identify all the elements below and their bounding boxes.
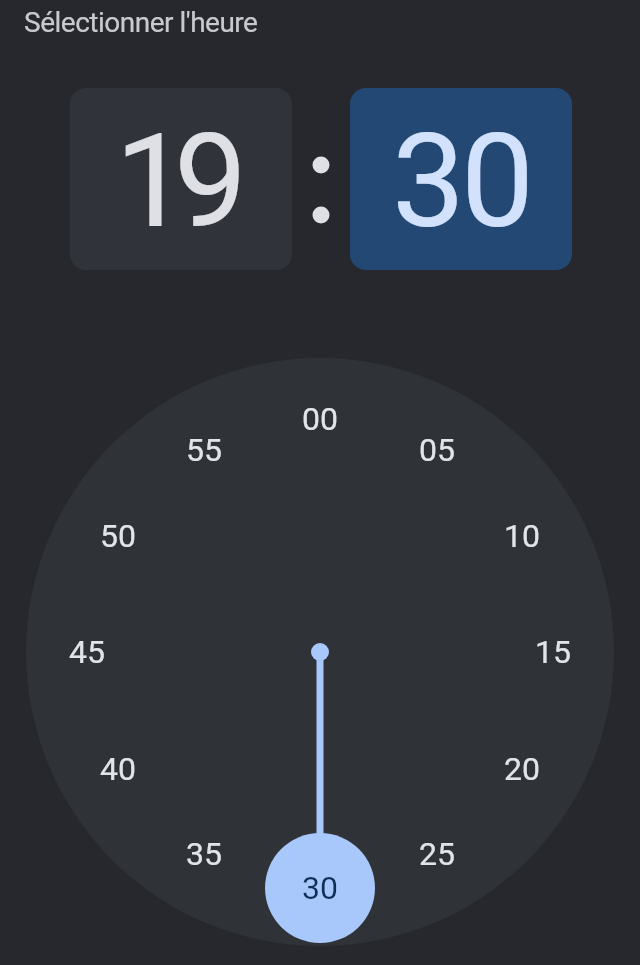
staticText: 50: [100, 517, 136, 555]
button[interactable]: 45: [7, 602, 167, 702]
staticText: 45: [69, 633, 105, 671]
button[interactable]: 30: [240, 838, 400, 938]
staticText: 05: [419, 431, 455, 469]
staticText: 55: [186, 431, 222, 469]
staticText: Sélectionner l'heure: [24, 6, 258, 39]
staticText: 30: [392, 105, 531, 257]
staticText: 19: [115, 105, 234, 257]
staticText: 35: [186, 835, 222, 873]
staticText: 30: [302, 869, 338, 907]
button[interactable]: 55: [124, 400, 284, 500]
button[interactable]: 00: [240, 369, 400, 469]
staticText: 40: [100, 750, 136, 788]
button[interactable]: 25: [357, 804, 517, 904]
button[interactable]: 35: [124, 804, 284, 904]
button[interactable]: 30: [350, 88, 572, 270]
staticText: 10: [504, 517, 540, 555]
staticText: 15: [535, 633, 571, 671]
button[interactable]: 40: [38, 719, 198, 819]
button[interactable]: 15: [473, 602, 633, 702]
staticText: 00: [302, 400, 338, 438]
staticText: 20: [504, 750, 540, 788]
button[interactable]: 50: [38, 486, 198, 586]
button[interactable]: 10: [442, 486, 602, 586]
button[interactable]: 20: [442, 719, 602, 819]
staticText: 25: [419, 835, 455, 873]
button[interactable]: 05: [357, 400, 517, 500]
button[interactable]: 19: [70, 88, 292, 270]
